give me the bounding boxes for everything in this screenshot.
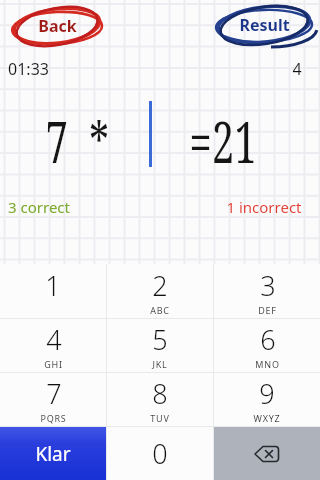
staticText: 7 * — [45, 103, 109, 169]
staticText: =21 — [189, 103, 257, 169]
button[interactable]: 2 — [107, 264, 213, 318]
staticText: 5 — [152, 321, 168, 358]
staticText: ABC — [150, 304, 170, 316]
button[interactable]: 6 — [214, 319, 320, 372]
staticText: GHI — [44, 358, 63, 370]
staticText: 4 — [46, 321, 62, 358]
staticText: 1 — [45, 267, 61, 304]
staticText: 6 — [260, 321, 276, 358]
staticText: 3 correct — [8, 197, 70, 217]
staticText: 8 — [152, 375, 168, 412]
staticText: 1 incorrect — [226, 197, 302, 217]
button[interactable]: 0 — [107, 427, 213, 480]
button[interactable]: Result — [215, 1, 313, 48]
staticText: Back — [38, 15, 77, 37]
staticText: DEF — [258, 304, 277, 316]
staticText: 4 — [292, 58, 302, 80]
staticText: JKL — [152, 358, 168, 370]
staticText: 7 — [46, 375, 62, 412]
button[interactable]: 8 — [107, 373, 213, 426]
button[interactable]: Klar — [0, 427, 106, 480]
staticText: 0 — [152, 435, 168, 472]
button[interactable]: 3 — [214, 264, 320, 318]
button[interactable]: 7 — [0, 373, 106, 426]
button[interactable]: 5 — [107, 319, 213, 372]
staticText: TUV — [150, 412, 170, 424]
button[interactable] — [214, 427, 320, 480]
staticText: 01:33 — [8, 58, 49, 80]
staticText: MNO — [255, 358, 280, 370]
button[interactable]: Back — [11, 3, 103, 49]
staticText: WXYZ — [253, 412, 281, 424]
staticText: Klar — [35, 441, 71, 467]
button[interactable]: 1 — [0, 264, 106, 318]
staticText: 2 — [152, 267, 168, 304]
staticText: Result — [239, 14, 290, 36]
staticText: 9 — [259, 375, 275, 412]
staticText: 3 — [260, 267, 276, 304]
staticText: PQRS — [40, 412, 67, 424]
button[interactable]: 9 — [214, 373, 320, 426]
button[interactable]: 4 — [0, 319, 106, 372]
